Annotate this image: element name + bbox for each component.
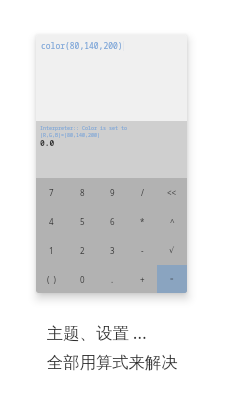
staticText: 4 bbox=[49, 216, 54, 227]
staticText: 主题、设置 … bbox=[47, 322, 147, 344]
button[interactable]: One bbox=[36, 236, 67, 265]
button[interactable]: Five bbox=[67, 207, 97, 236]
staticText: << bbox=[167, 187, 177, 198]
button[interactable]: Plus bbox=[127, 265, 157, 293]
button[interactable]: Seven bbox=[36, 178, 67, 207]
button[interactable]: Four bbox=[36, 207, 67, 236]
staticText: 全部用算式来解决 bbox=[47, 352, 178, 373]
button[interactable]: Square root bbox=[157, 236, 187, 265]
staticText: color(80,140,200) bbox=[41, 40, 123, 51]
staticText: . bbox=[111, 274, 114, 285]
staticText: / bbox=[141, 187, 144, 198]
staticText: 0.0 bbox=[40, 137, 55, 148]
button[interactable]: Parentheses bbox=[36, 265, 67, 293]
staticText: 0 bbox=[80, 274, 85, 285]
staticText: 5 bbox=[80, 216, 85, 227]
button[interactable]: Multiply bbox=[127, 207, 157, 236]
button[interactable]: Two bbox=[67, 236, 97, 265]
button[interactable]: Equals bbox=[157, 265, 187, 293]
staticText: 6 bbox=[110, 216, 115, 227]
staticText: 7 bbox=[49, 187, 54, 198]
button[interactable]: Six bbox=[97, 207, 127, 236]
staticText: 1 bbox=[49, 245, 54, 256]
staticText: = bbox=[170, 275, 174, 283]
staticText: ^ bbox=[170, 216, 175, 227]
button[interactable]: Minus bbox=[127, 236, 157, 265]
button[interactable]: Zero bbox=[67, 265, 97, 293]
staticText: (R,G,B)=(80,140,200) bbox=[40, 132, 101, 139]
staticText: * bbox=[140, 216, 145, 227]
staticText: - bbox=[141, 245, 144, 256]
staticText: Interpreter:: Color is set to bbox=[40, 125, 128, 132]
staticText: √ bbox=[169, 246, 175, 255]
staticText: 8 bbox=[80, 187, 85, 198]
staticText: ( ) bbox=[47, 274, 56, 285]
button[interactable]: Backspace bbox=[157, 178, 187, 207]
button[interactable]: Nine bbox=[97, 178, 127, 207]
staticText: 9 bbox=[110, 187, 115, 198]
staticText: + bbox=[140, 274, 145, 285]
button[interactable]: Divide bbox=[127, 178, 157, 207]
staticText: 2 bbox=[80, 245, 85, 256]
button[interactable]: Three bbox=[97, 236, 127, 265]
button[interactable]: Eight bbox=[67, 178, 97, 207]
button[interactable]: Power bbox=[157, 207, 187, 236]
button[interactable]: Calculator screenshot bbox=[36, 35, 187, 293]
staticText: 3 bbox=[110, 245, 115, 256]
